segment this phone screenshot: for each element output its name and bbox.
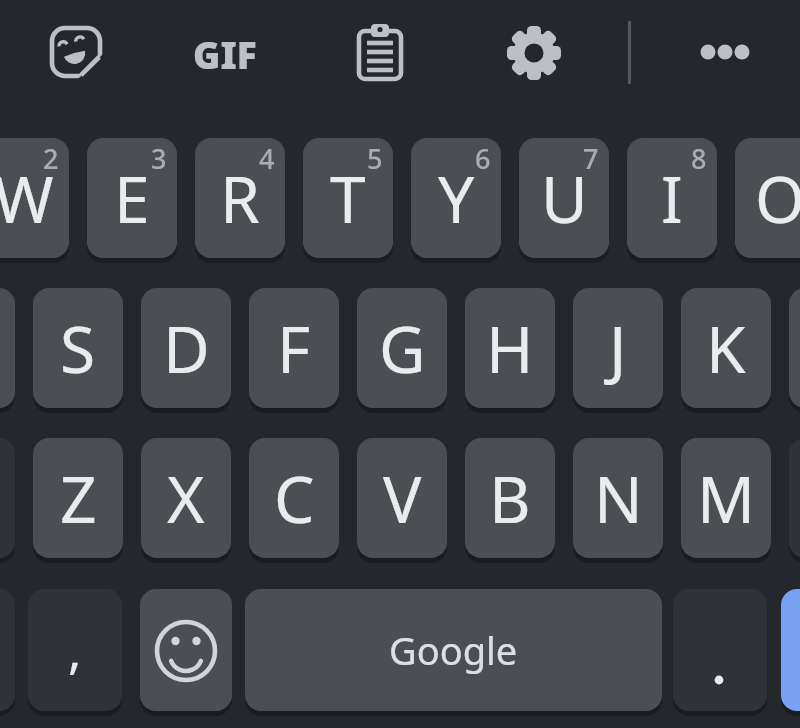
button[interactable]: F xyxy=(249,288,339,408)
staticText: C xyxy=(274,455,315,542)
button[interactable]: J xyxy=(573,288,663,408)
staticText: Google xyxy=(389,624,518,676)
staticText: I xyxy=(661,155,683,242)
button[interactable]: S xyxy=(33,288,123,408)
staticText: 7 xyxy=(583,140,599,177)
button[interactable] xyxy=(781,589,800,711)
staticText: 5 xyxy=(367,140,383,177)
staticText: 3 xyxy=(151,140,167,177)
button[interactable]: X xyxy=(141,438,231,558)
button[interactable] xyxy=(694,38,756,66)
button[interactable]: A xyxy=(0,288,15,408)
button[interactable]: I xyxy=(627,138,717,258)
button[interactable]: N xyxy=(573,438,663,558)
button[interactable]: Y xyxy=(411,138,501,258)
button[interactable] xyxy=(0,589,15,711)
staticText: V xyxy=(383,455,422,542)
button[interactable]: C xyxy=(249,438,339,558)
button[interactable]: G xyxy=(357,288,447,408)
staticText: 4 xyxy=(259,140,275,177)
button[interactable] xyxy=(673,589,767,711)
button[interactable] xyxy=(355,22,405,82)
button[interactable]: B xyxy=(465,438,555,558)
button[interactable] xyxy=(140,589,232,711)
staticText: U xyxy=(541,155,588,242)
button[interactable] xyxy=(49,25,103,79)
staticText: 6 xyxy=(475,140,491,177)
staticText: H xyxy=(486,305,534,392)
staticText: 2 xyxy=(43,140,59,177)
staticText: N xyxy=(594,455,643,542)
button[interactable]: Z xyxy=(33,438,123,558)
staticText: X xyxy=(167,455,205,542)
button[interactable]: L xyxy=(789,288,800,408)
staticText: O xyxy=(755,155,800,242)
button[interactable]: , xyxy=(28,589,122,711)
button[interactable]: U xyxy=(519,138,609,258)
button[interactable]: M xyxy=(681,438,771,558)
staticText: G xyxy=(379,305,426,392)
staticText: F xyxy=(277,305,311,392)
staticText: W xyxy=(0,155,54,242)
button[interactable]: V xyxy=(357,438,447,558)
button[interactable]: R xyxy=(195,138,285,258)
button[interactable]: W xyxy=(0,138,69,258)
button[interactable]: H xyxy=(465,288,555,408)
staticText: GIF xyxy=(193,29,257,79)
staticText: Z xyxy=(60,455,97,542)
button[interactable] xyxy=(789,438,800,558)
staticText: Y xyxy=(438,155,475,242)
button[interactable] xyxy=(506,25,562,81)
button[interactable]: D xyxy=(141,288,231,408)
staticText: R xyxy=(220,155,260,242)
staticText: E xyxy=(114,155,150,242)
staticText: M xyxy=(697,455,756,542)
staticText: J xyxy=(609,305,627,392)
button[interactable]: Google xyxy=(245,589,662,711)
staticText: D xyxy=(163,305,210,392)
staticText: 8 xyxy=(691,140,707,177)
staticText: S xyxy=(60,305,96,392)
staticText: , xyxy=(68,616,82,684)
staticText: B xyxy=(489,455,531,542)
button[interactable]: T xyxy=(303,138,393,258)
button[interactable]: GIF xyxy=(180,26,270,82)
button[interactable] xyxy=(0,438,15,558)
staticText: T xyxy=(330,155,366,242)
button[interactable]: E xyxy=(87,138,177,258)
button[interactable]: O xyxy=(735,138,800,258)
button[interactable]: K xyxy=(681,288,771,408)
staticText: K xyxy=(706,305,746,392)
